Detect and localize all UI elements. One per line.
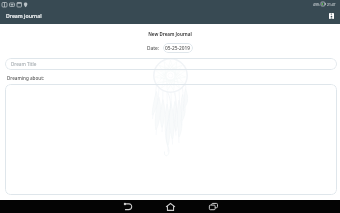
staticText: New Dream Journal bbox=[0, 31, 340, 37]
button[interactable]: Recents bbox=[201, 200, 225, 213]
staticText: Dream journal bbox=[6, 12, 42, 19]
button[interactable] bbox=[5, 84, 337, 195]
staticText: Dream Title bbox=[11, 61, 37, 67]
staticText: 49% bbox=[313, 2, 320, 6]
button[interactable]: 05-25-2019 bbox=[163, 43, 193, 53]
button[interactable]: Home bbox=[158, 200, 182, 213]
button[interactable]: Save bbox=[324, 9, 338, 23]
staticText: Date: bbox=[147, 45, 160, 52]
staticText: 21:47 bbox=[327, 2, 336, 6]
button[interactable]: Dream Title bbox=[5, 58, 337, 70]
staticText: Dreaming about: bbox=[7, 75, 45, 81]
staticText: 05-25-2019 bbox=[165, 45, 191, 52]
button[interactable]: Back bbox=[116, 200, 140, 213]
